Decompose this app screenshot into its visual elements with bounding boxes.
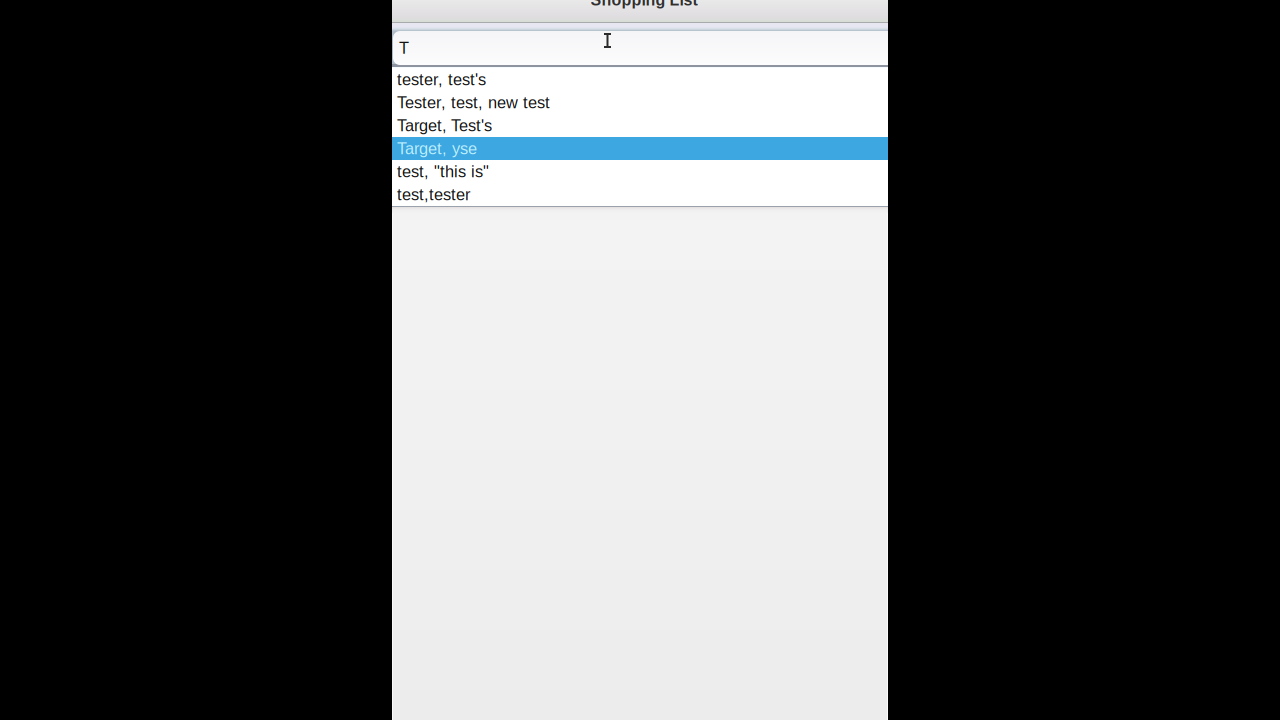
button[interactable]: Target, yse [392,137,888,160]
staticText: tester, test's [397,70,486,89]
staticText: Tester, test, new test [397,93,550,112]
button[interactable]: Target, Test's [392,114,888,137]
staticText: Shopping List [590,0,697,9]
staticText: Target, Test's [397,116,492,135]
button[interactable]: test, "this is" [392,160,888,183]
staticText: test,tester [397,185,470,204]
button[interactable]: Tester, test, new test [392,91,888,114]
staticText: Target, yse [397,139,477,158]
button[interactable]: T [393,31,899,65]
staticText: T [399,39,409,57]
button[interactable]: tester, test's [392,68,888,91]
staticText: test, "this is" [397,162,489,181]
button[interactable]: test,tester [392,183,888,206]
